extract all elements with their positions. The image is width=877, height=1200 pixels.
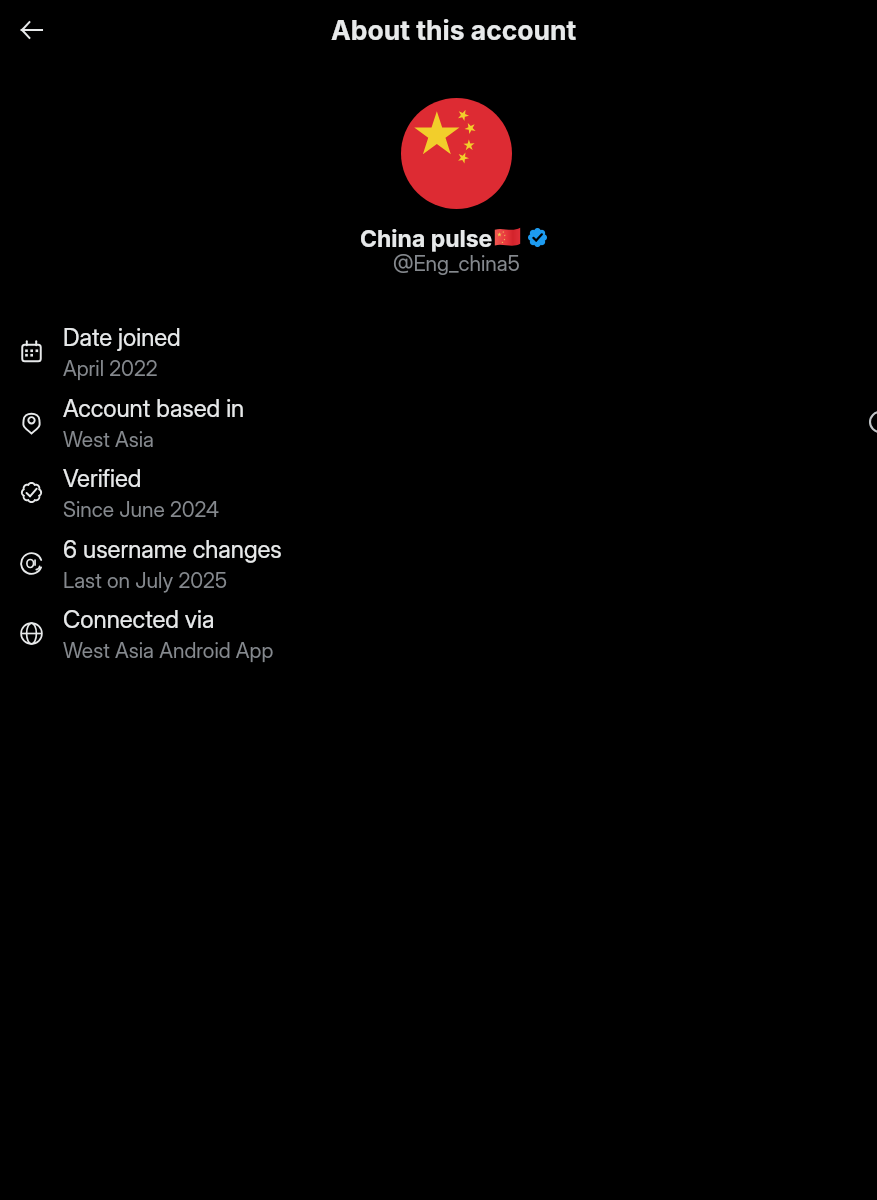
button[interactable]: Profile photo — [401, 98, 512, 209]
staticText: About this account — [331, 14, 577, 46]
button[interactable]: Account based in — [0, 392, 877, 462]
staticText: Date joined — [63, 323, 181, 352]
staticText: Last on July 2025 — [63, 568, 228, 593]
staticText: West Asia Android App — [63, 638, 274, 663]
button[interactable]: Back — [10, 8, 54, 52]
staticText: West Asia — [63, 427, 154, 452]
button[interactable]: Verified — [0, 462, 877, 532]
button[interactable]: Connected via — [0, 603, 877, 673]
staticText: Since June 2024 — [63, 497, 219, 522]
staticText: China pulse — [360, 225, 493, 253]
button[interactable]: More information — [867, 409, 877, 435]
button[interactable]: Date joined — [0, 321, 877, 391]
staticText: April 2022 — [63, 356, 158, 381]
staticText: @Eng_china5 — [393, 251, 520, 276]
staticText: Verified — [63, 464, 142, 493]
staticText: Account based in — [63, 394, 245, 423]
button[interactable]: 6 username changes — [0, 533, 877, 603]
staticText: 6 username changes — [63, 535, 282, 564]
staticText: Connected via — [63, 605, 215, 634]
